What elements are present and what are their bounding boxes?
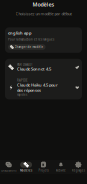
staticText: Pour la traduction et les langues	[8, 38, 54, 41]
staticText: PAR DÉFAUT	[17, 63, 32, 66]
staticText: Réglages	[72, 169, 85, 172]
staticText: Activité	[56, 169, 66, 172]
button[interactable]: Projets	[35, 162, 52, 172]
staticText: english app	[8, 30, 32, 36]
staticText: Choisissez un modèle par défaut	[15, 11, 71, 16]
button[interactable]: Modèles	[17, 162, 35, 172]
button[interactable]: Activité	[52, 162, 70, 172]
staticText: RAPIDE	[17, 79, 27, 82]
staticText: rapides	[17, 93, 27, 96]
staticText: Changer de modèle	[15, 45, 44, 49]
button[interactable]: Changer de modèle	[8, 44, 46, 50]
button[interactable]: Réglages	[70, 162, 87, 172]
staticText: Projets	[38, 169, 48, 172]
staticText: Claude Sonnet 4.5	[17, 66, 51, 72]
staticText: Modèles	[32, 1, 54, 8]
staticText: Modèles	[20, 169, 32, 172]
staticText: Discussions	[1, 169, 16, 172]
button[interactable]: Discussions	[0, 162, 17, 172]
staticText: Claude Haiku 4.5 pour des réponses	[17, 82, 58, 93]
